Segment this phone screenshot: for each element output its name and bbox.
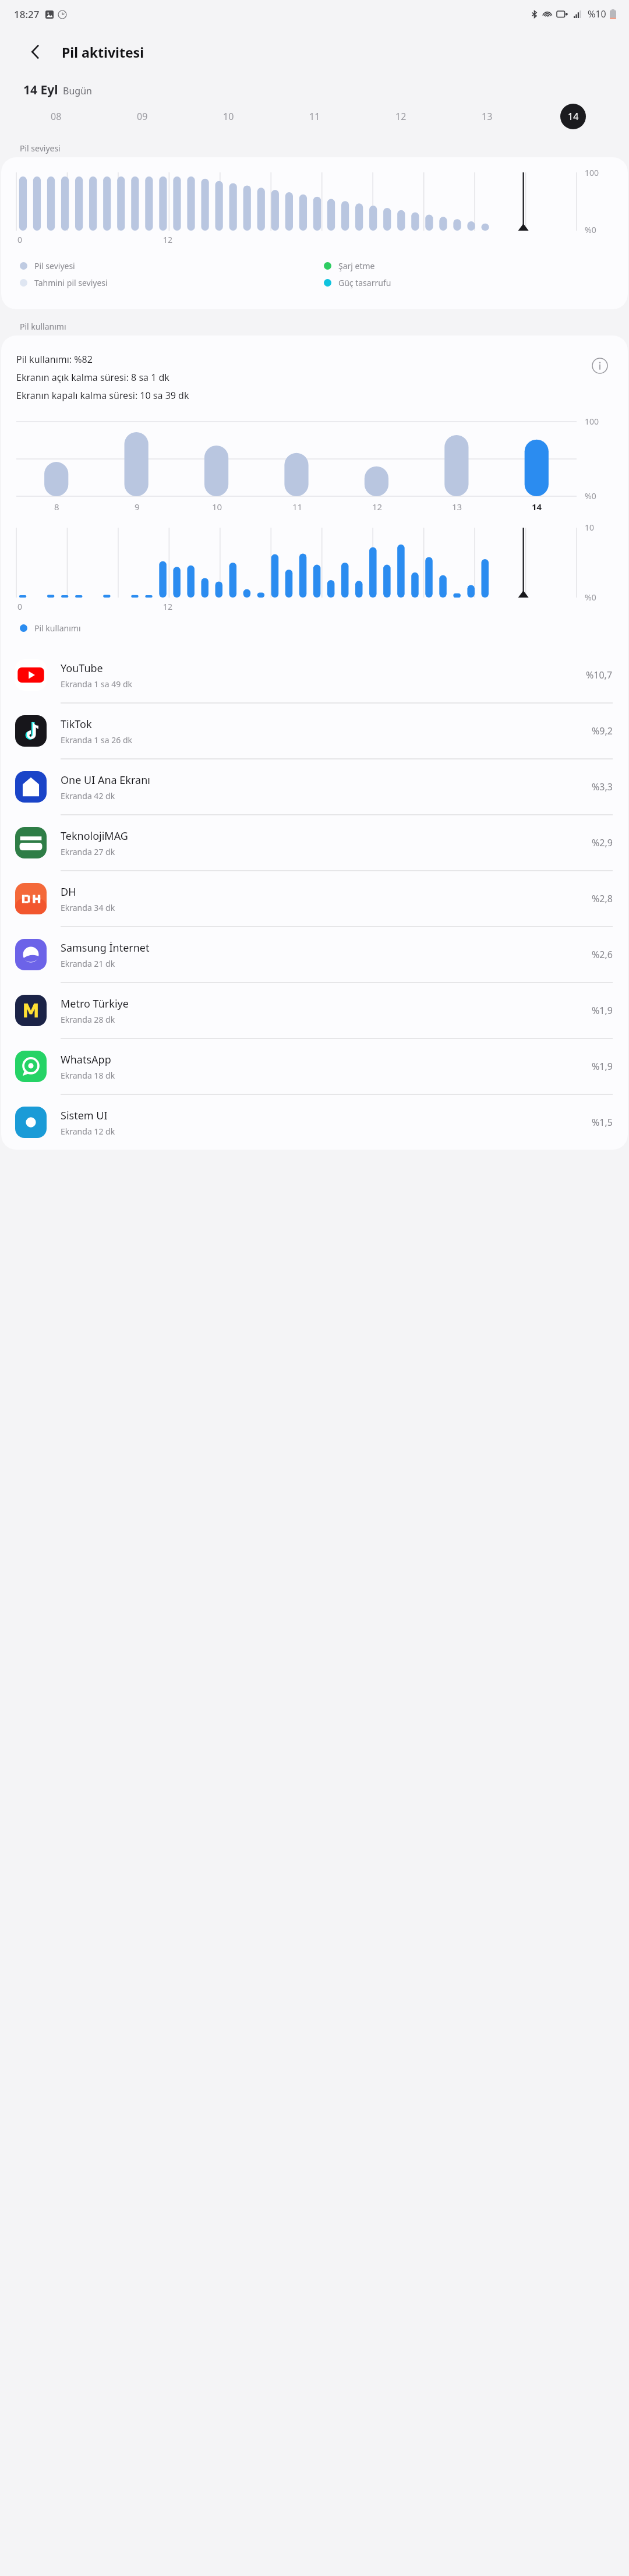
staticText: 11 xyxy=(309,110,320,123)
staticText: %2,8 xyxy=(592,892,613,905)
staticText: 12 xyxy=(372,501,383,513)
staticText: 09 xyxy=(137,110,148,123)
staticText: TeknolojiMAG xyxy=(61,829,128,843)
staticText: Ekranın açık kalma süresi: 8 sa 1 dk xyxy=(16,371,169,384)
staticText: 12 xyxy=(163,234,173,245)
staticText: 0 xyxy=(17,601,23,612)
staticText: TikTok xyxy=(61,717,92,732)
staticText: 9 xyxy=(135,501,140,513)
staticText: %10 xyxy=(588,8,606,20)
staticText: Güç tasarrufu xyxy=(338,277,391,288)
staticText: %3,3 xyxy=(592,780,613,793)
staticText: %1,5 xyxy=(592,1116,613,1129)
staticText: %0 xyxy=(585,224,596,235)
staticText: %1,9 xyxy=(592,1060,613,1073)
staticText: WhatsApp xyxy=(61,1052,111,1067)
staticText: Ekranda 21 dk xyxy=(61,958,115,969)
button[interactable]: YouTube xyxy=(1,648,628,702)
staticText: 08 xyxy=(51,110,62,123)
button[interactable]: 14 xyxy=(530,98,616,135)
staticText: 11 xyxy=(292,501,303,513)
staticText: 10 xyxy=(585,522,595,533)
staticText: 0 xyxy=(17,234,23,245)
staticText: 14 xyxy=(532,501,542,513)
staticText: Ekranda 28 dk xyxy=(61,1014,115,1025)
staticText: 12 xyxy=(395,110,407,123)
button[interactable]: WhatsApp xyxy=(1,1039,628,1094)
staticText: YouTube xyxy=(61,661,103,676)
staticText: Ekranda 12 dk xyxy=(61,1126,115,1137)
button[interactable]: 11 xyxy=(271,98,358,135)
staticText: DH xyxy=(61,885,76,899)
staticText: 12 xyxy=(163,601,173,612)
staticText: Ekranda 42 dk xyxy=(61,790,115,801)
staticText: Pil seviyesi xyxy=(34,260,75,271)
staticText: Tahmini pil seviyesi xyxy=(34,277,108,288)
staticText: Ekranda 18 dk xyxy=(61,1070,115,1081)
staticText: Pil seviyesi xyxy=(20,143,61,154)
button[interactable]: 10 xyxy=(185,98,271,135)
staticText: Ekranda 27 dk xyxy=(61,846,115,857)
staticText: 13 xyxy=(482,110,493,123)
staticText: Ekranın kapalı kalma süresi: 10 sa 39 dk xyxy=(16,389,189,402)
staticText: %10,7 xyxy=(586,669,613,681)
staticText: %2,9 xyxy=(592,836,613,849)
button[interactable]: Metro Türkiye xyxy=(1,983,628,1038)
staticText: %0 xyxy=(585,592,596,603)
button[interactable]: 09 xyxy=(99,98,185,135)
staticText: %0 xyxy=(585,490,596,501)
staticText: 100 xyxy=(585,416,599,427)
staticText: 100 xyxy=(585,167,599,178)
button[interactable]: 08 xyxy=(13,98,99,135)
staticText: Ekranda 1 sa 49 dk xyxy=(61,679,132,690)
button[interactable]: Samsung İnternet xyxy=(1,927,628,982)
staticText: 13 xyxy=(452,501,462,513)
button[interactable]: 13 xyxy=(444,98,530,135)
staticText: 14 Eyl xyxy=(23,82,58,98)
staticText: %2,6 xyxy=(592,948,613,961)
staticText: 18:27 xyxy=(14,8,40,21)
staticText: 10 xyxy=(223,110,234,123)
staticText: 10 xyxy=(212,501,222,513)
staticText: %9,2 xyxy=(592,725,613,737)
staticText: 8 xyxy=(54,501,59,513)
staticText: Samsung İnternet xyxy=(61,941,150,955)
staticText: Pil aktivitesi xyxy=(62,43,144,61)
staticText: Metro Türkiye xyxy=(61,997,129,1011)
staticText: %1,9 xyxy=(592,1004,613,1017)
staticText: 14 xyxy=(568,110,579,123)
staticText: Sistem UI xyxy=(61,1108,108,1123)
button[interactable]: 12 xyxy=(358,98,444,135)
staticText: Ekranda 1 sa 26 dk xyxy=(61,734,132,745)
button[interactable]: DH xyxy=(1,871,628,926)
button[interactable]: TeknolojiMAG xyxy=(1,815,628,870)
staticText: Pil kullanımı xyxy=(20,321,66,332)
button[interactable]: Bilgi xyxy=(587,353,613,379)
staticText: Ekranda 34 dk xyxy=(61,902,115,913)
staticText: One UI Ana Ekranı xyxy=(61,773,150,787)
button[interactable]: One UI Ana Ekranı xyxy=(1,759,628,814)
button[interactable]: Sistem UI xyxy=(1,1095,628,1150)
staticText: Bugün xyxy=(63,84,92,97)
staticText: Pil kullanımı: %82 xyxy=(16,353,93,366)
staticText: Şarj etme xyxy=(338,260,375,271)
button[interactable]: TikTok xyxy=(1,704,628,758)
button[interactable]: Back xyxy=(22,38,49,65)
staticText: Pil kullanımı xyxy=(34,623,81,634)
